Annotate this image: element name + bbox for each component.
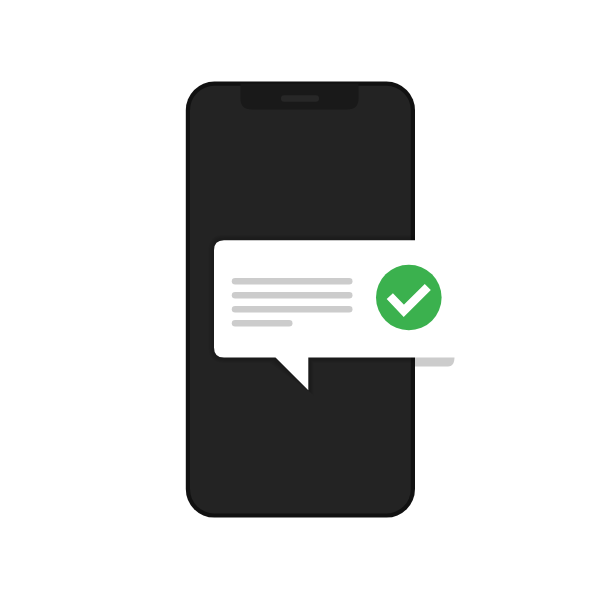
button[interactable]: Message sent successfully bbox=[0, 0, 600, 600]
